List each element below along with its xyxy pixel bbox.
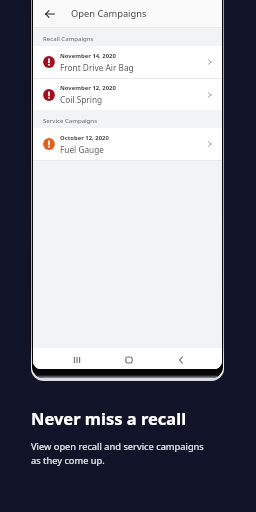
button[interactable]: November 14, 2020 [33, 46, 222, 78]
staticText: Recall Campaigns [43, 34, 94, 42]
staticText: Service Campaigns [43, 116, 98, 124]
staticText: Front Drive Air Bag [60, 62, 134, 73]
staticText: Fuel Gauge [60, 144, 105, 155]
other: Open [205, 140, 213, 148]
staticText: View open recall and service campaigns a… [31, 440, 204, 467]
staticText: Open Campaigns [71, 7, 147, 20]
button[interactable]: Back [42, 6, 58, 22]
button[interactable]: October 12, 2020 [33, 128, 222, 160]
staticText: November 12, 2020 [60, 84, 116, 92]
staticText: Never miss a recall [31, 407, 187, 429]
button[interactable]: Home [121, 352, 137, 368]
staticText: Coil Spring [60, 94, 103, 105]
button[interactable]: November 12, 2020 [33, 79, 222, 110]
staticText: November 14, 2020 [60, 52, 116, 60]
button[interactable]: Back [173, 352, 189, 368]
other: Open [205, 58, 213, 66]
button[interactable]: Recents [69, 352, 85, 368]
other: Open [205, 91, 213, 99]
staticText: October 12, 2020 [60, 134, 109, 142]
